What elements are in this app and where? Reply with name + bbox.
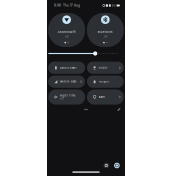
staticText: Mobile data <box>60 80 76 83</box>
staticText: alarm <box>98 95 104 99</box>
button[interactable]: Audio <box>87 62 124 74</box>
staticText: 9:06 Thu 17 Aug <box>54 4 80 7</box>
staticText: 93 <box>112 4 116 7</box>
button[interactable]: Mobile data <box>48 75 85 88</box>
staticText: Bluetooth <box>98 30 113 33</box>
button[interactable]: Night Time <box>48 89 85 105</box>
button[interactable]: Power <box>103 162 110 169</box>
staticText: Off <box>60 97 64 100</box>
button[interactable]: Bluetooth <box>87 13 124 47</box>
staticText: AndroidWifi <box>58 30 76 33</box>
staticText: Battery Saver <box>60 66 77 69</box>
button[interactable]: Hotspot <box>87 75 124 88</box>
staticText: Hotspot <box>98 80 109 83</box>
staticText: On <box>104 35 107 38</box>
button[interactable]: Edit tiles <box>117 107 121 112</box>
button[interactable]: Battery Saver <box>48 62 85 74</box>
button[interactable]: AndroidWifi <box>48 13 85 47</box>
staticText: On <box>65 35 68 38</box>
button[interactable]: Brightness <box>48 51 124 56</box>
button[interactable]: Settings <box>113 162 120 169</box>
staticText: Audio <box>98 66 107 69</box>
button[interactable]: alarm <box>87 89 124 105</box>
staticText: Night Time <box>60 94 76 97</box>
